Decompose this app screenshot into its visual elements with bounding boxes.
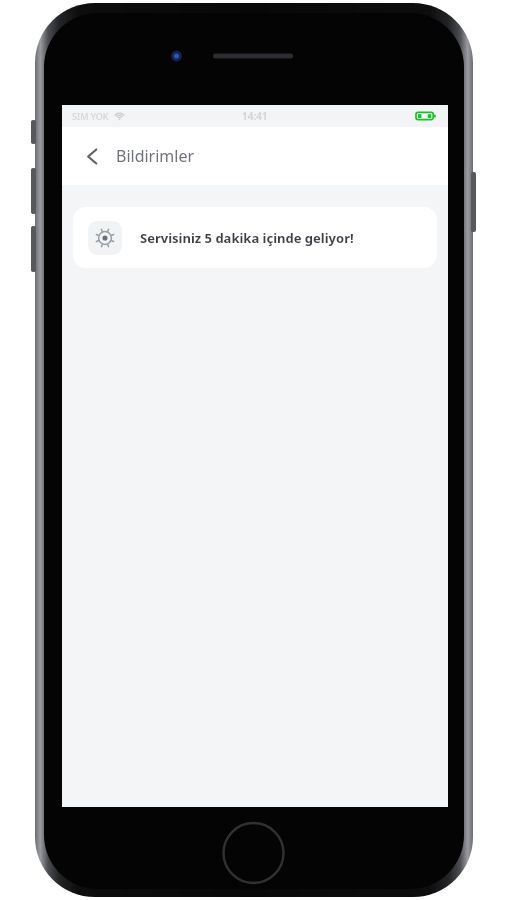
staticText: Bildirimler [116, 145, 195, 167]
button[interactable]: Back [75, 139, 109, 173]
button[interactable]: Servisiniz 5 dakika içinde geliyor! [73, 207, 437, 268]
staticText: SIM YOK [72, 110, 109, 122]
staticText: 14:41 [242, 109, 268, 123]
staticText: Servisiniz 5 dakika içinde geliyor! [140, 229, 354, 247]
